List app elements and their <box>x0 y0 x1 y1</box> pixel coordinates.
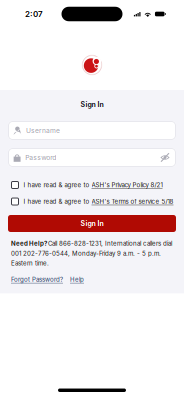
staticText: Need Help? Call 866-828-1231, Internatio… <box>11 240 172 267</box>
staticText: Sign In <box>80 219 103 228</box>
button[interactable]: Forgot Password? <box>11 276 63 283</box>
staticText: Forgot Password? <box>11 276 63 283</box>
staticText: 2:07 <box>25 9 43 19</box>
button[interactable]: I have read & agree to ASH's Privacy Pol… <box>11 180 176 190</box>
staticText: Password <box>25 153 56 162</box>
staticText: Sign In <box>80 100 103 109</box>
button[interactable]: Sign In <box>8 215 176 232</box>
staticText: I have read & agree to ASH's Terms of se… <box>23 198 173 205</box>
staticText: Username <box>26 126 60 135</box>
staticText: I have read & agree to ASH's Privacy Pol… <box>23 181 162 189</box>
button[interactable]: I have read & agree to ASH's Terms of se… <box>11 196 176 206</box>
staticText: Help <box>70 276 84 283</box>
button[interactable]: Help <box>70 276 84 283</box>
